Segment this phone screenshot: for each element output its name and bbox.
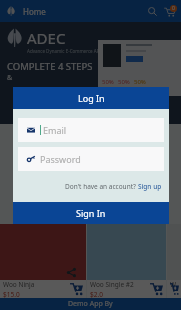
- staticText: $15.0: [3, 290, 20, 298]
- staticText: 0: [172, 5, 175, 12]
- staticText: Woo Single #2: [90, 280, 134, 289]
- staticText: &: [7, 73, 91, 83]
- staticText: Log In: [78, 92, 105, 104]
- button[interactable]: Add to cart: [148, 281, 164, 297]
- staticText: Advance Dynamic E-Commerce APP: [27, 48, 103, 54]
- staticText: Woo Ninja: [3, 280, 35, 289]
- button[interactable]: Share: [65, 266, 78, 279]
- staticText: ADEC: [27, 28, 66, 48]
- staticText: Demo App By: [68, 299, 113, 309]
- staticText: 50%: [102, 78, 114, 86]
- staticText: Password: [40, 153, 81, 165]
- button[interactable]: Wo: [167, 224, 181, 298]
- button[interactable]: Add to cart: [68, 281, 84, 297]
- button[interactable]: Search: [145, 4, 160, 19]
- staticText: 50%: [134, 78, 146, 86]
- button[interactable]: Add to cart: [170, 281, 179, 297]
- staticText: 50%: [118, 78, 130, 86]
- staticText: Sign In: [76, 207, 106, 219]
- button[interactable]: Woo Single #2: [87, 224, 166, 298]
- staticText: Sign up: [138, 182, 162, 191]
- button[interactable]: Sign up: [138, 182, 162, 191]
- button[interactable]: Sign In: [13, 202, 169, 224]
- button[interactable]: Share: [0, 224, 86, 298]
- button[interactable]: Menu: [3, 3, 19, 19]
- staticText: Don't have an account?: [65, 182, 138, 191]
- staticText: $2.0: [90, 290, 103, 298]
- staticText: Home: [23, 6, 46, 17]
- button[interactable]: Cart: [161, 3, 177, 19]
- staticText: Email: [43, 124, 67, 136]
- staticText: COMPLETE 4 STEPS: [7, 60, 93, 73]
